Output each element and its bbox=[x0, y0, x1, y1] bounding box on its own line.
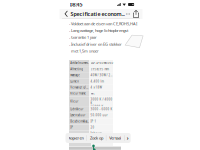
staticText: IP bbox=[70, 126, 73, 129]
staticText: 40W / 30W / 25W bbox=[90, 73, 113, 77]
staticText: Zoek op bbox=[90, 135, 103, 141]
staticText: Vertaal bbox=[109, 135, 121, 141]
button[interactable]: Kopiëren bbox=[65, 133, 86, 143]
staticText: met 1,5m snoer bbox=[69, 48, 99, 53]
staticText: Lichtkleur bbox=[70, 107, 83, 111]
staticText: 3000 - 6000 K bbox=[90, 107, 112, 111]
staticText: 50.000 uur bbox=[90, 113, 107, 117]
staticText: - Voldoet aan de eisen van CE,ROHS,HAI bbox=[69, 21, 137, 26]
staticText: 4.400 lm bbox=[90, 80, 103, 83]
staticText: Lumen bbox=[70, 80, 79, 83]
staticText: Inbouw bbox=[90, 132, 101, 135]
button[interactable]: Vertaal bbox=[106, 133, 124, 143]
staticText: › bbox=[127, 134, 129, 142]
staticText: Levensduur bbox=[70, 113, 85, 117]
staticText: - Inclusief driver en EG stekker bbox=[69, 41, 122, 47]
staticText: IP 1 bbox=[90, 120, 96, 123]
staticText: GLP-LP60W6060 bbox=[90, 61, 113, 65]
staticText: 08:45 bbox=[69, 1, 82, 8]
button[interactable]: Share bbox=[131, 9, 140, 19]
staticText: 4 x 18W bbox=[90, 86, 101, 89]
staticText: 20 bbox=[90, 126, 94, 129]
staticText: 595x595 mm bbox=[90, 67, 108, 71]
button[interactable]: More actions bbox=[125, 133, 131, 143]
staticText: Specificatie econom... bbox=[70, 10, 124, 18]
staticText: 3000 K / 4000 K / 6000 K bbox=[90, 98, 112, 108]
staticText: Afmeting bbox=[70, 67, 83, 71]
staticText: - Lang wattage, hoge lichtopbrengst bbox=[69, 28, 128, 33]
button[interactable]: Back bbox=[62, 9, 70, 19]
staticText: Kopiëren bbox=[68, 135, 83, 141]
button[interactable]: More bbox=[124, 9, 131, 19]
staticText: Artikelnummer bbox=[70, 61, 89, 65]
staticText: Kleur frame bbox=[70, 92, 86, 95]
staticText: Kleur bbox=[70, 100, 78, 103]
staticText: Beschermklasse bbox=[70, 120, 89, 123]
staticText: - Garantie 1 jaar bbox=[69, 35, 97, 40]
staticText: Wit bbox=[90, 92, 94, 95]
staticText: Montagewijze bbox=[70, 132, 88, 135]
staticText: Vervangt gloeilamp bbox=[70, 86, 89, 89]
staticText: Wattage bbox=[70, 73, 80, 77]
button[interactable]: Zoek op bbox=[87, 133, 106, 143]
